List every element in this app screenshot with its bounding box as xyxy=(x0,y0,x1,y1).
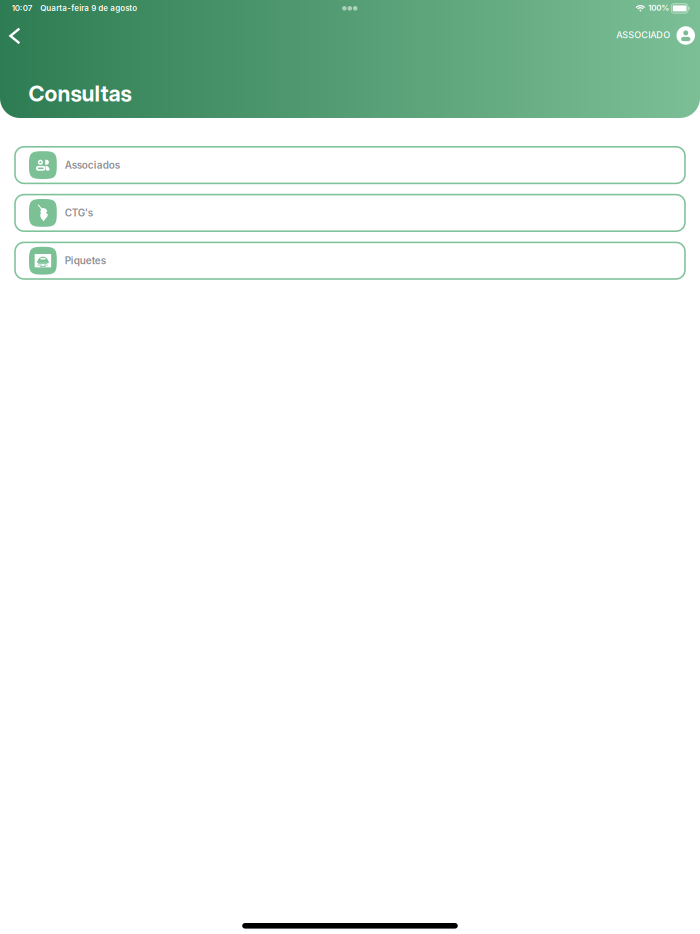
staticText: CTG's xyxy=(65,207,93,219)
staticText: Consultas xyxy=(28,80,131,107)
staticText: Piquetes xyxy=(65,255,106,267)
button[interactable]: CTG's xyxy=(15,195,685,231)
button[interactable]: Piquetes xyxy=(15,242,685,279)
staticText: 10:07 xyxy=(12,3,33,13)
staticText: ASSOCIADO xyxy=(616,29,670,40)
button[interactable]: ASSOCIADO xyxy=(611,21,700,50)
button[interactable]: Back xyxy=(0,21,29,51)
button[interactable]: Associados xyxy=(15,147,685,183)
staticText: 100% xyxy=(648,3,669,13)
staticText: Quarta-feira 9 de agosto xyxy=(40,3,137,13)
staticText: Associados xyxy=(65,159,120,171)
